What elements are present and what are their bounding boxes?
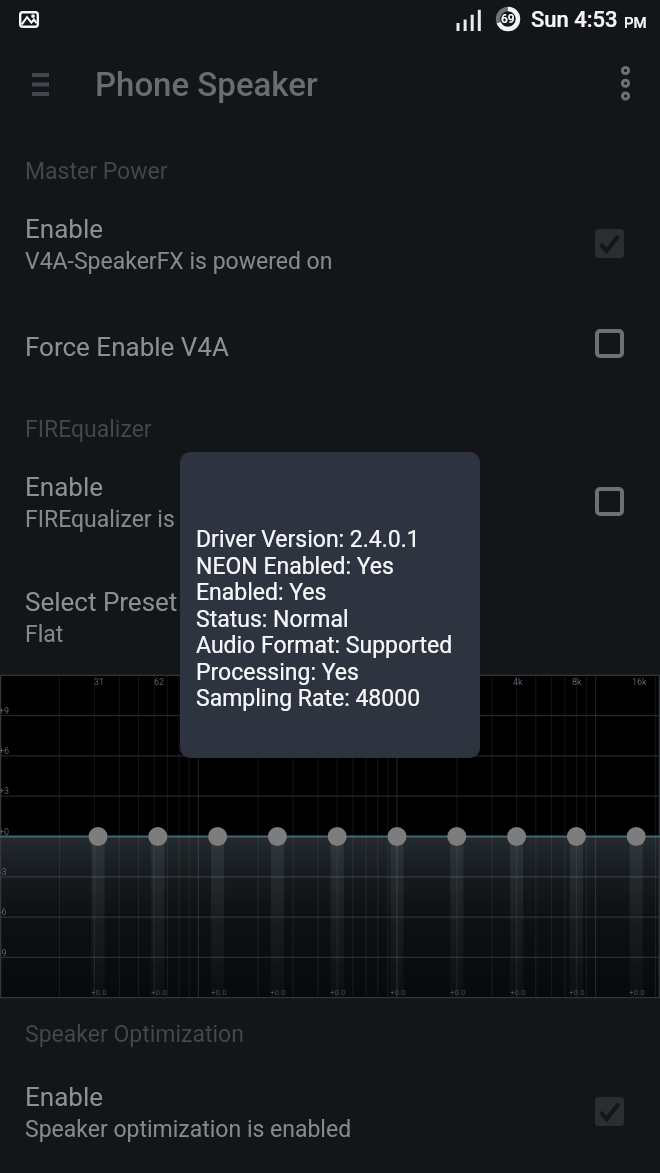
button[interactable]: Enable	[0, 204, 660, 290]
staticText: V4A-SpeakerFX is powered on	[25, 248, 333, 275]
button[interactable]: Disabled	[585, 477, 633, 525]
staticText: Enable	[25, 1082, 103, 1112]
staticText: Enable	[25, 214, 103, 244]
button[interactable]: Select Preset	[0, 577, 660, 663]
staticText: +0.0	[510, 988, 526, 997]
staticText: 8k	[572, 677, 582, 688]
staticText: Select Preset	[25, 587, 178, 617]
staticText: +0.0	[629, 988, 645, 997]
button[interactable]: More options	[602, 58, 650, 110]
button[interactable]: Disabled	[585, 319, 633, 367]
staticText: 250	[273, 677, 289, 688]
staticText: 16k	[632, 677, 647, 688]
button[interactable]: Driver Version: 2.4.0.1	[180, 452, 480, 758]
staticText: Processing: Yes	[196, 659, 359, 686]
staticText: +6	[0, 746, 10, 757]
button[interactable]: Enable	[0, 462, 660, 548]
staticText: 31	[94, 677, 105, 688]
button[interactable]: Equalizer band sliders	[0, 676, 660, 997]
staticText: PM	[624, 14, 647, 32]
staticText: Sun 4:53	[531, 7, 618, 33]
staticText: Audio Format: Supported	[196, 632, 453, 659]
staticText: Enabled: Yes	[196, 579, 327, 606]
staticText: 62	[154, 677, 165, 688]
staticText: +0.0	[270, 988, 286, 997]
staticText: Status: Normal	[196, 606, 349, 633]
button[interactable]: Enable	[0, 1072, 660, 1158]
button[interactable]: Enabled	[585, 1087, 633, 1135]
staticText: +0.0	[390, 988, 406, 997]
staticText: NEON Enabled: Yes	[196, 553, 394, 580]
button[interactable]: Force Enable V4A	[0, 322, 660, 384]
staticText: Speaker Optimization	[25, 1021, 244, 1048]
staticText: Speaker optimization is enabled	[25, 1116, 352, 1143]
staticText: Driver Version: 2.4.0.1	[196, 526, 420, 553]
staticText: +9	[0, 706, 10, 717]
button[interactable]: Navigation menu	[8, 61, 73, 109]
staticText: +3	[0, 786, 10, 797]
staticText: +0.0	[151, 988, 167, 997]
staticText: +0.0	[450, 988, 466, 997]
staticText: Sampling Rate: 48000	[196, 685, 421, 712]
staticText: FIREqualizer	[25, 416, 152, 443]
staticText: +0	[0, 827, 10, 838]
button[interactable]: Enabled	[585, 219, 633, 267]
staticText: 500	[333, 677, 349, 688]
staticText: 4k	[513, 677, 523, 688]
staticText: Phone Speaker	[95, 65, 318, 104]
staticText: +0.0	[569, 988, 585, 997]
staticText: -6	[0, 907, 7, 918]
staticText: Force Enable V4A	[25, 332, 229, 362]
staticText: +0.0	[330, 988, 346, 997]
staticText: Master Power	[25, 158, 168, 185]
staticText: Enable	[25, 472, 103, 502]
staticText: 125	[214, 677, 230, 688]
staticText: 69	[501, 12, 515, 26]
staticText: +0.0	[91, 988, 107, 997]
staticText: -9	[0, 948, 7, 959]
staticText: +0.0	[211, 988, 227, 997]
staticText: -3	[0, 867, 7, 878]
button[interactable]: Screenshot captured	[10, 4, 48, 36]
staticText: FIREqualizer is enabled	[25, 506, 262, 533]
staticText: Flat	[25, 621, 64, 648]
